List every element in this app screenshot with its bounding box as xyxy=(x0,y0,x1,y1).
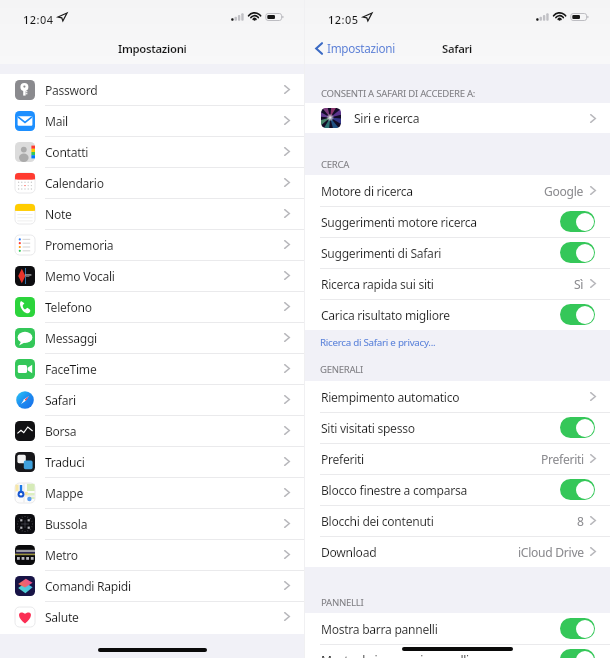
staticText: Traduci xyxy=(45,454,85,470)
staticText: iCloud Drive xyxy=(518,544,584,560)
button[interactable]: Preferiti xyxy=(305,443,610,474)
staticText: Promemoria xyxy=(45,237,114,253)
staticText: FaceTime xyxy=(45,361,97,377)
staticText: Comandi Rapidi xyxy=(45,578,131,594)
button[interactable]: Carica risultato migliore xyxy=(560,304,595,325)
staticText: Memo Vocali xyxy=(45,268,115,284)
button[interactable]: FaceTime xyxy=(0,353,304,384)
button[interactable]: Messaggi xyxy=(0,322,304,353)
button[interactable]: Memo Vocali xyxy=(0,260,304,291)
staticText: Salute xyxy=(45,609,79,625)
staticText: Suggerimenti motore ricerca xyxy=(321,214,477,230)
staticText: GENERALI xyxy=(320,363,364,376)
staticText: Preferiti xyxy=(321,451,364,467)
button[interactable]: Motore di ricerca xyxy=(305,175,610,206)
button[interactable]: Safari xyxy=(0,384,304,415)
staticText: Suggerimenti di Safari xyxy=(321,245,442,261)
staticText: Safari xyxy=(442,41,473,56)
staticText: Impostazioni xyxy=(327,40,395,56)
button[interactable]: Contatti xyxy=(0,136,304,167)
button[interactable]: Comandi Rapidi xyxy=(0,570,304,601)
staticText: PANNELLI xyxy=(321,596,364,609)
button[interactable]: Mostra le icone nei pannelli xyxy=(560,649,595,658)
staticText: Blocchi dei contenuti xyxy=(321,513,434,529)
staticText: Metro xyxy=(45,547,78,563)
staticText: Contatti xyxy=(45,144,89,160)
button[interactable]: Blocco finestre a comparsa xyxy=(560,479,595,500)
button[interactable]: Suggerimenti di Safari xyxy=(560,242,595,263)
staticText: Preferiti xyxy=(541,451,584,467)
staticText: Download xyxy=(321,544,377,560)
staticText: Borsa xyxy=(45,423,77,439)
button[interactable]: Mappe xyxy=(0,477,304,508)
button[interactable]: Mostra barra pannelli xyxy=(560,618,595,639)
button[interactable]: Borsa xyxy=(0,415,304,446)
button[interactable]: Impostazioni xyxy=(315,40,395,56)
button[interactable]: Siti visitati spesso xyxy=(560,417,595,438)
staticText: Messaggi xyxy=(45,330,97,346)
staticText: Carica risultato migliore xyxy=(321,307,450,323)
button[interactable]: Mail xyxy=(0,105,304,136)
staticText: CONSENTI A SAFARI DI ACCEDERE A: xyxy=(321,87,476,100)
staticText: Impostazioni xyxy=(118,41,187,56)
staticText: Motore di ricerca xyxy=(321,183,413,199)
staticText: Ricerca rapida sui siti xyxy=(321,276,434,292)
button[interactable]: Password xyxy=(0,74,304,105)
staticText: CERCA xyxy=(321,158,350,171)
staticText: Bussola xyxy=(45,516,88,532)
button[interactable]: Bussola xyxy=(0,508,304,539)
button[interactable]: Telefono xyxy=(0,291,304,322)
staticText: Note xyxy=(45,206,72,222)
button[interactable]: Promemoria xyxy=(0,229,304,260)
button[interactable]: Siri e ricerca xyxy=(305,103,610,133)
staticText: 8 xyxy=(577,513,584,529)
staticText: Google xyxy=(544,183,584,199)
staticText: Mail xyxy=(45,113,68,129)
button[interactable]: Metro xyxy=(0,539,304,570)
staticText: Riempimento automatico xyxy=(321,389,460,405)
staticText: Mappe xyxy=(45,485,84,501)
button[interactable]: Suggerimenti motore ricerca xyxy=(560,211,595,232)
staticText: Mostra le icone nei pannelli xyxy=(321,652,469,658)
button[interactable]: Riempimento automatico xyxy=(305,381,610,412)
button[interactable]: Salute xyxy=(0,601,304,632)
staticText: Siti visitati spesso xyxy=(321,420,415,436)
staticText: Telefono xyxy=(45,299,92,315)
button[interactable]: Ricerca di Safari e privacy... xyxy=(320,336,436,349)
button[interactable]: Calendario xyxy=(0,167,304,198)
staticText: Siri e ricerca xyxy=(354,110,420,126)
button[interactable]: Blocchi dei contenuti xyxy=(305,505,610,536)
staticText: Sì xyxy=(574,276,584,292)
staticText: Password xyxy=(45,82,98,98)
button[interactable]: Traduci xyxy=(0,446,304,477)
staticText: Calendario xyxy=(45,175,104,191)
staticText: Mostra barra pannelli xyxy=(321,621,438,637)
staticText: 12:05 xyxy=(328,12,359,27)
button[interactable]: Ricerca rapida sui siti xyxy=(305,268,610,299)
button[interactable]: Download xyxy=(305,536,610,567)
staticText: Safari xyxy=(45,392,76,408)
staticText: Blocco finestre a comparsa xyxy=(321,482,467,498)
button[interactable]: Note xyxy=(0,198,304,229)
staticText: 12:04 xyxy=(23,12,54,27)
